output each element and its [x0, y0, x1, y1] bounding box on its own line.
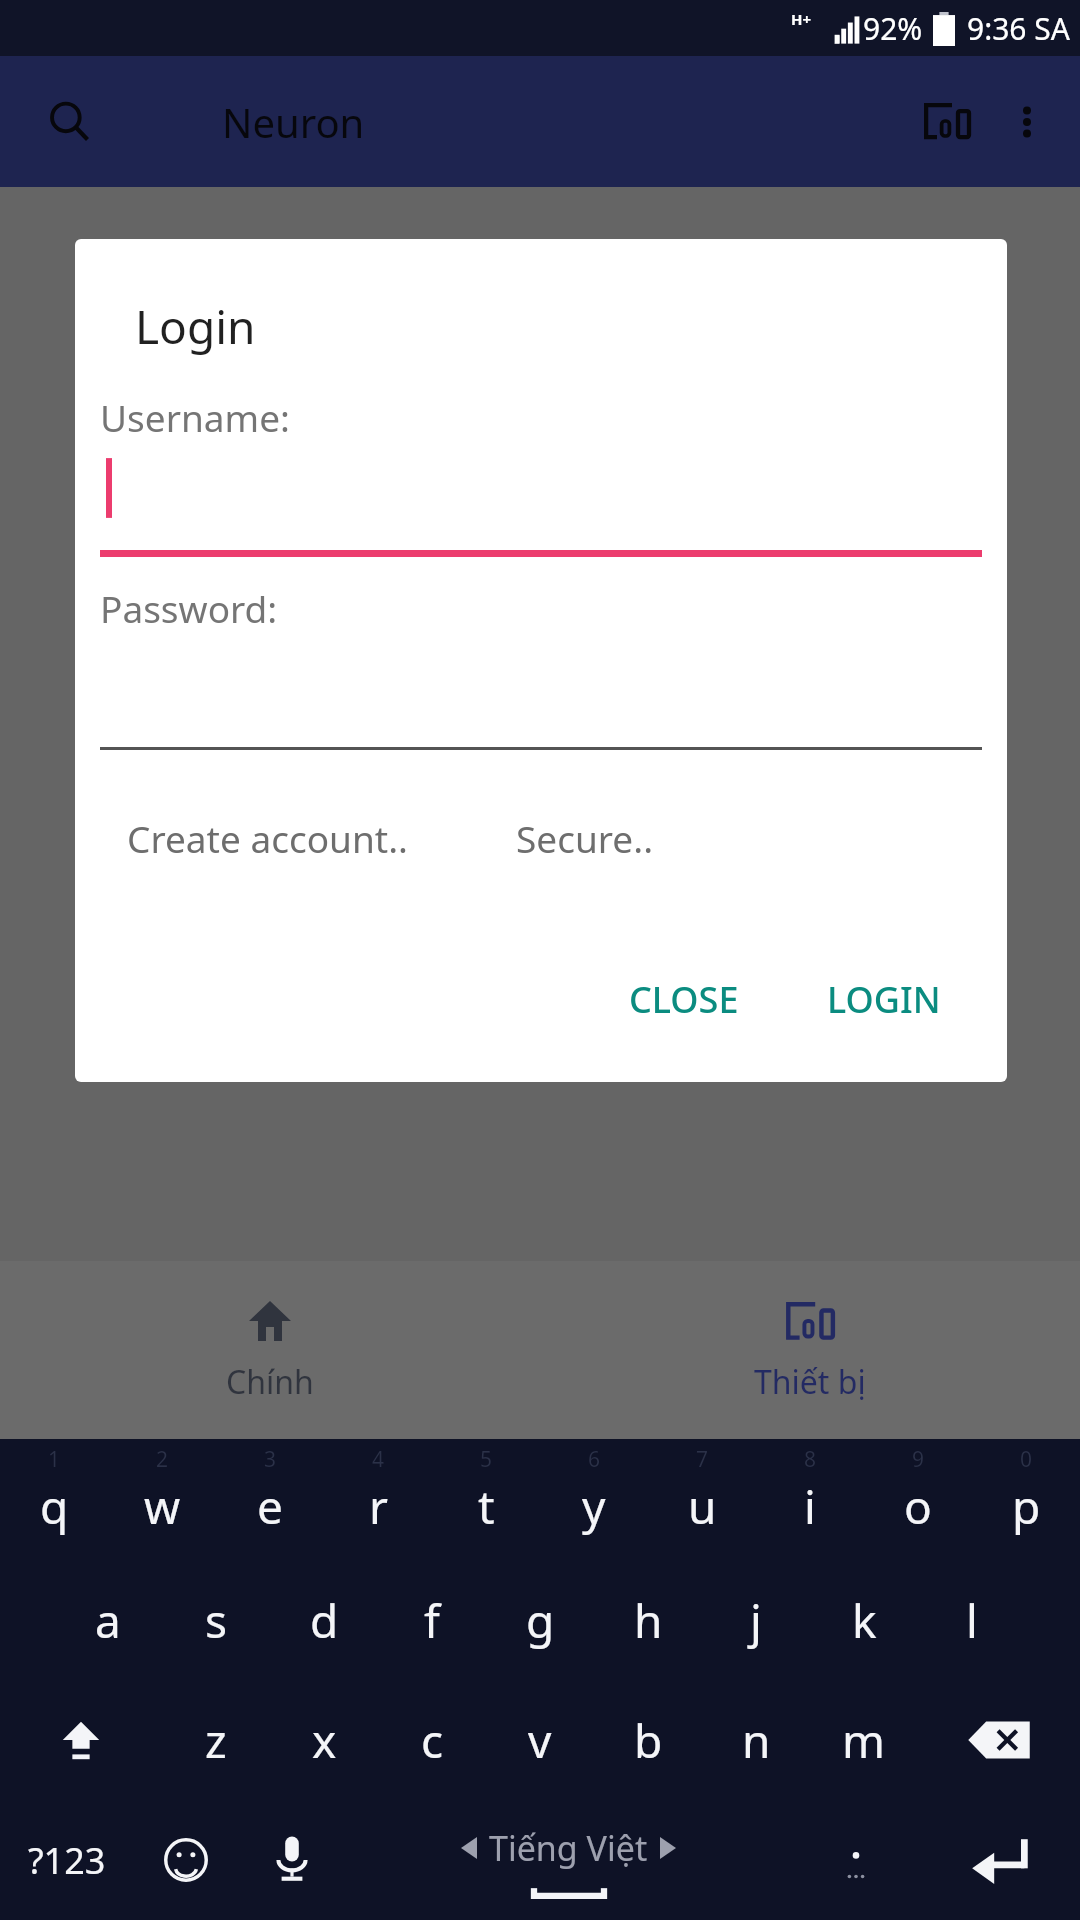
staticText: 4 [372, 1445, 385, 1474]
staticText: b [634, 1709, 663, 1772]
staticText: LOGIN [827, 975, 941, 1024]
staticText: y [582, 1475, 606, 1538]
staticText: ?123 [28, 1836, 106, 1885]
button[interactable]: Voice input [239, 1800, 345, 1920]
button[interactable]: 5 [432, 1439, 540, 1560]
button[interactable]: g [486, 1560, 594, 1680]
button[interactable] [100, 633, 982, 751]
button[interactable]: 1 [0, 1439, 108, 1560]
button[interactable]: Create account.. [123, 807, 412, 869]
button[interactable]: m [810, 1680, 918, 1800]
staticText: m [842, 1709, 886, 1772]
staticText: H+ [791, 9, 812, 29]
button[interactable]: Backspace [918, 1680, 1080, 1800]
button[interactable]: Space [345, 1800, 792, 1920]
staticText: l [966, 1589, 978, 1652]
staticText: x [312, 1709, 337, 1772]
staticText: s [205, 1589, 228, 1652]
button[interactable] [792, 1800, 920, 1920]
staticText: e [257, 1475, 283, 1538]
staticText: c [421, 1709, 444, 1772]
staticText: CLOSE [629, 975, 739, 1024]
button[interactable]: LOGIN [809, 961, 959, 1038]
staticText: o [904, 1475, 932, 1538]
button[interactable]: v [486, 1680, 594, 1800]
button[interactable] [100, 442, 982, 557]
button[interactable]: d [270, 1560, 378, 1680]
staticText: d [310, 1589, 339, 1652]
button[interactable]: f [378, 1560, 486, 1680]
button[interactable]: h [594, 1560, 702, 1680]
button[interactable]: a [54, 1560, 162, 1680]
staticText: 6 [588, 1445, 601, 1474]
button[interactable]: Enter [920, 1800, 1080, 1920]
staticText: Thiết bị [754, 1360, 866, 1404]
button[interactable]: Devices [904, 79, 990, 165]
button[interactable]: Emoji [133, 1800, 239, 1920]
button[interactable]: More options [990, 85, 1064, 159]
button[interactable]: c [378, 1680, 486, 1800]
staticText: 7 [696, 1445, 709, 1474]
staticText: 92% [863, 8, 923, 49]
staticText: Tiếng Việt [489, 1825, 648, 1871]
staticText: f [424, 1589, 440, 1652]
staticText: j [750, 1589, 762, 1652]
staticText: Password: [100, 583, 278, 633]
button[interactable]: Thiết bị [540, 1261, 1080, 1439]
staticText: r [369, 1475, 388, 1538]
button[interactable]: j [702, 1560, 810, 1680]
button[interactable]: 3 [216, 1439, 324, 1560]
staticText: 3 [264, 1445, 277, 1474]
button[interactable]: Secure.. [512, 807, 658, 869]
staticText: a [95, 1589, 121, 1652]
staticText: 5 [480, 1445, 493, 1474]
button[interactable]: z [162, 1680, 270, 1800]
staticText: Create account.. [127, 813, 408, 863]
button[interactable]: 6 [540, 1439, 648, 1560]
button[interactable]: 7 [648, 1439, 756, 1560]
staticText: z [205, 1709, 227, 1772]
staticText: Login [135, 295, 256, 358]
button[interactable]: b [594, 1680, 702, 1800]
staticText: k [852, 1589, 877, 1652]
staticText: Neuron [222, 95, 365, 149]
staticText: 2 [156, 1445, 169, 1474]
staticText: Secure.. [516, 813, 654, 863]
button[interactable]: k [810, 1560, 918, 1680]
staticText: n [742, 1709, 771, 1772]
button[interactable]: x [270, 1680, 378, 1800]
button[interactable]: 9 [864, 1439, 972, 1560]
staticText: t [478, 1475, 495, 1538]
staticText: v [528, 1709, 552, 1772]
staticText: i [804, 1475, 816, 1538]
button[interactable]: l [918, 1560, 1026, 1680]
staticText: 9 [912, 1445, 925, 1474]
staticText: u [688, 1475, 717, 1538]
button[interactable]: CLOSE [611, 961, 757, 1038]
staticText: w [144, 1475, 181, 1538]
button[interactable]: Shift [0, 1680, 162, 1800]
staticText: g [526, 1589, 555, 1652]
staticText: 0 [1020, 1445, 1033, 1474]
button[interactable]: 4 [324, 1439, 432, 1560]
staticText: 8 [804, 1445, 817, 1474]
staticText: Username: [100, 392, 290, 442]
button[interactable]: Chính [0, 1261, 540, 1439]
staticText: 1 [48, 1445, 61, 1474]
staticText: q [40, 1475, 69, 1538]
staticText: 9:36 SA [967, 8, 1070, 49]
staticText: p [1012, 1475, 1041, 1538]
button[interactable]: ?123 [0, 1800, 133, 1920]
button[interactable]: 2 [108, 1439, 216, 1560]
button[interactable]: Search [34, 86, 106, 158]
button[interactable]: 8 [756, 1439, 864, 1560]
button[interactable]: 0 [972, 1439, 1080, 1560]
staticText: Chính [226, 1360, 314, 1404]
button[interactable]: s [162, 1560, 270, 1680]
button[interactable]: n [702, 1680, 810, 1800]
staticText: h [634, 1589, 663, 1652]
